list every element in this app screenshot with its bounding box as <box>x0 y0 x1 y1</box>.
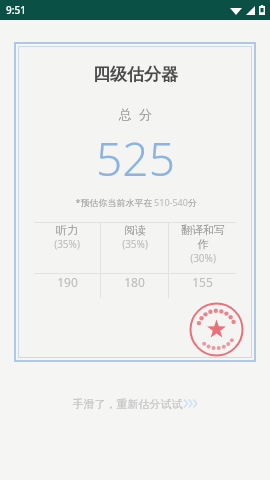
staticText: (35%) <box>54 237 80 251</box>
staticText: 525 <box>96 127 175 190</box>
staticText: 手滑了，重新估分试试 <box>71 396 184 411</box>
staticText: *预估你当前水平在 <box>74 196 154 208</box>
staticText: 四级估分器 <box>93 64 178 85</box>
staticText: 510-540 <box>154 196 188 208</box>
staticText: 分 <box>188 197 197 208</box>
staticText: (35%) <box>122 237 148 251</box>
staticText: 155 <box>192 274 213 290</box>
staticText: 阅读 <box>124 223 146 237</box>
staticText: 9:51 <box>6 3 26 17</box>
staticText: 总 分 <box>119 105 152 123</box>
staticText: 180 <box>124 274 145 290</box>
staticText: 听力 <box>56 223 78 237</box>
other: 估分结果印章 <box>189 302 244 357</box>
staticText: (30%) <box>190 251 216 265</box>
button[interactable]: 手滑了，重新估分试试 <box>0 390 270 417</box>
staticText: 190 <box>57 274 78 290</box>
staticText: 翻译和写 作 <box>181 223 225 251</box>
